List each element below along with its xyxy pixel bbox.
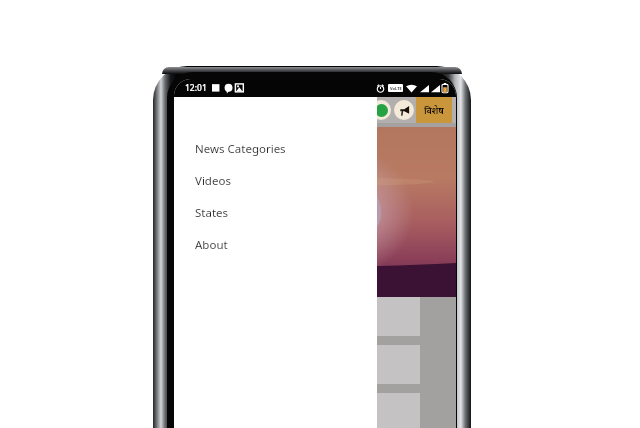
button[interactable]: विशेष — [416, 97, 452, 123]
staticText: States — [195, 205, 229, 221]
button[interactable]: Announcements — [394, 100, 414, 120]
button[interactable]: Videos — [174, 165, 377, 197]
staticText: Videos — [195, 173, 231, 189]
staticText: विशेष — [424, 104, 444, 116]
button[interactable]: WhatsApp — [371, 100, 391, 120]
staticText: About — [195, 237, 228, 253]
button[interactable]: States — [174, 197, 377, 229]
staticText: VoLTE — [390, 86, 402, 91]
button[interactable]: Open article — [174, 345, 420, 384]
button[interactable]: News Categories — [174, 133, 377, 165]
button[interactable]: About — [174, 229, 377, 261]
button[interactable]: Open article — [174, 393, 420, 428]
staticText: 12:01 — [185, 82, 207, 94]
button[interactable]: Open article — [174, 297, 420, 336]
staticText: News Categories — [195, 141, 286, 157]
